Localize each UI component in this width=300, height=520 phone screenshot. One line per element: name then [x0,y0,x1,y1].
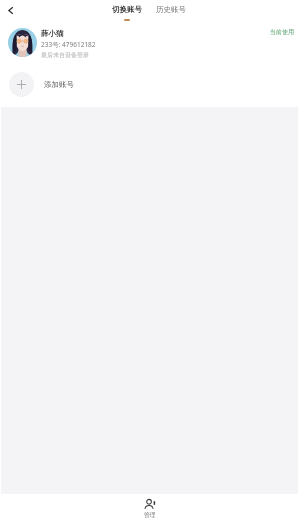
staticText: 最后来自设备登录 [41,51,89,59]
button[interactable]: 薛小猫 [0,22,300,64]
button[interactable]: 历史账号 [152,1,190,25]
staticText: 当前使用 [270,28,294,36]
staticText: 薛小猫 [41,29,64,38]
staticText: 切换账号 [112,5,142,14]
staticText: 管理 [144,511,156,518]
staticText: 233号: 479612182 [41,40,96,49]
staticText: 历史账号 [156,5,186,14]
button[interactable]: 添加账号 [0,66,300,103]
button[interactable]: Back [0,0,20,20]
button[interactable]: 切换账号 [108,1,146,25]
staticText: 添加账号 [44,80,74,89]
button[interactable]: 管理 [126,494,174,520]
